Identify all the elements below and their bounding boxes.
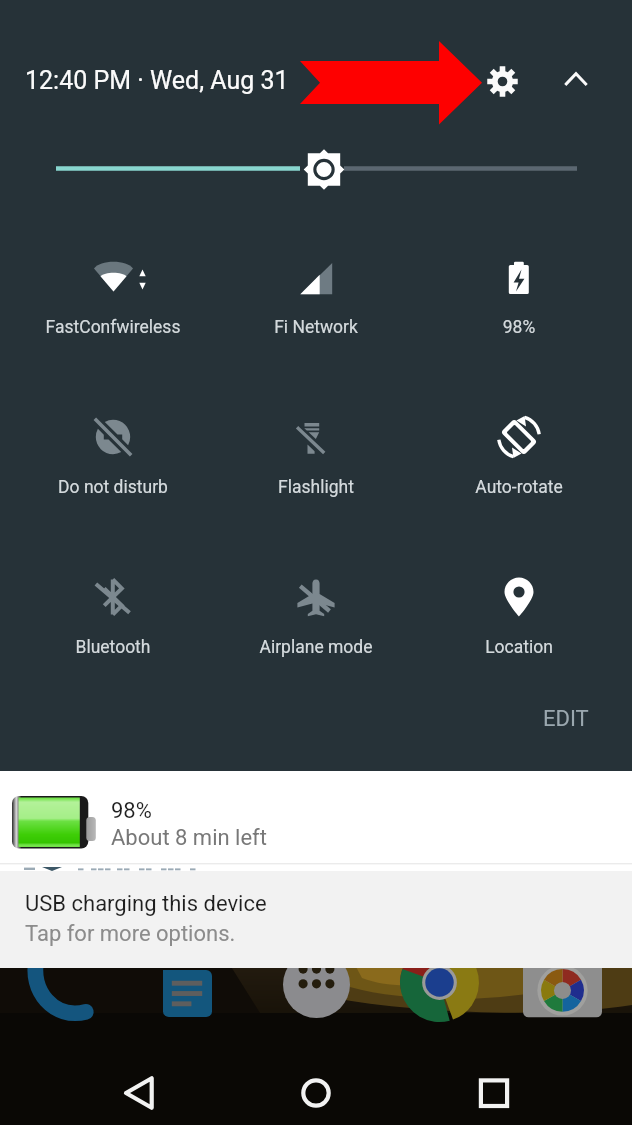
staticText: Airplane mode xyxy=(215,637,417,658)
button[interactable]: EDIT xyxy=(522,695,610,743)
staticText: Tap for more options. xyxy=(25,921,236,947)
staticText: 98% xyxy=(111,798,152,824)
staticText: Auto-rotate xyxy=(418,477,620,498)
staticText: FastConfwireless xyxy=(12,317,214,338)
button[interactable]: 12:40 PM · Wed, Aug 31 xyxy=(25,66,289,106)
button[interactable]: FastConfwireless xyxy=(12,237,214,357)
staticText: Fi Network xyxy=(215,317,417,338)
button[interactable]: Bluetooth xyxy=(12,557,214,677)
staticText: Do not disturb xyxy=(12,477,214,498)
staticText: Flashlight xyxy=(215,477,417,498)
staticText: USB charging this device xyxy=(25,891,267,917)
staticText: Location xyxy=(418,637,620,658)
button[interactable]: 98% xyxy=(418,237,620,357)
button[interactable]: Settings xyxy=(477,56,527,106)
button[interactable]: Recents xyxy=(467,1066,521,1120)
button[interactable]: 98% xyxy=(0,771,632,871)
button[interactable]: Do not disturb xyxy=(12,397,214,517)
staticText: 98% xyxy=(418,317,620,338)
button[interactable]: Brightness xyxy=(0,139,632,199)
button[interactable]: Back xyxy=(112,1066,166,1120)
button[interactable]: Collapse xyxy=(554,57,598,101)
staticText: 12:40 PM · Wed, Aug 31 xyxy=(25,66,289,95)
button[interactable]: Airplane mode xyxy=(215,557,417,677)
button[interactable]: Fi Network xyxy=(215,237,417,357)
staticText: About 8 min left xyxy=(111,825,267,851)
button[interactable]: USB charging this device xyxy=(0,871,632,968)
button[interactable]: Home xyxy=(289,1066,343,1120)
staticText: Bluetooth xyxy=(12,637,214,658)
button[interactable]: Location xyxy=(418,557,620,677)
button[interactable]: Flashlight xyxy=(215,397,417,517)
button[interactable]: Auto-rotate xyxy=(418,397,620,517)
staticText: EDIT xyxy=(543,706,589,732)
